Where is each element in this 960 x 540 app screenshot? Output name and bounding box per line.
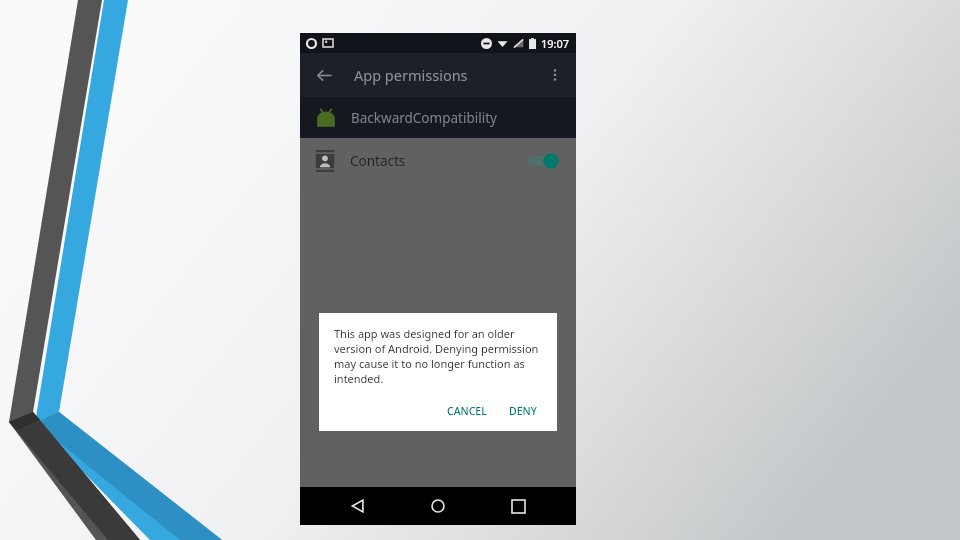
button[interactable]: Recents	[496, 487, 540, 525]
button[interactable]: Contacts permission toggle	[528, 150, 560, 172]
button[interactable]: Home	[416, 487, 460, 525]
staticText: DENY	[509, 404, 537, 418]
staticText: CANCEL	[447, 404, 487, 418]
button[interactable]: Contacts	[300, 138, 576, 184]
button[interactable]: DENY	[501, 399, 545, 423]
staticText: BackwardCompatibility	[351, 109, 497, 127]
staticText: App permissions	[354, 65, 468, 85]
staticText: 19:07	[541, 36, 570, 51]
button[interactable]: CANCEL	[439, 399, 495, 423]
button[interactable]: More options	[540, 60, 570, 90]
button[interactable]: Back	[308, 59, 340, 91]
staticText: Contacts	[350, 152, 406, 170]
button[interactable]: Back	[336, 487, 380, 525]
staticText: This app was designed for an older versi…	[334, 326, 542, 386]
